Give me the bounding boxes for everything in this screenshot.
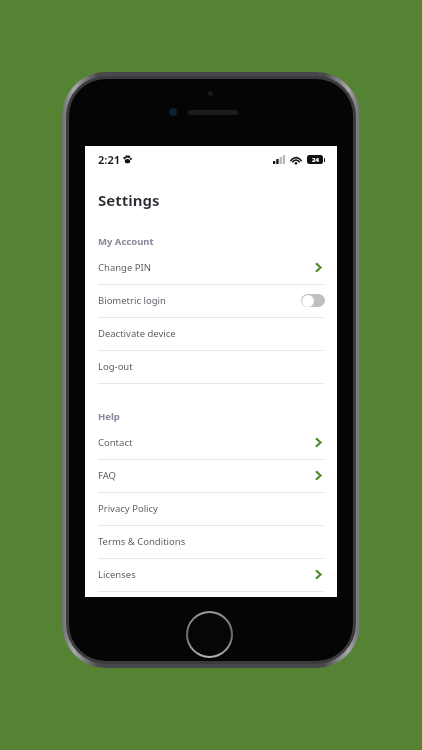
staticText: Deactivate device [98, 327, 176, 340]
staticText: Change PIN [98, 261, 151, 274]
staticText: Contact [98, 436, 133, 449]
button[interactable]: Privacy Policy [85, 493, 337, 526]
staticText: Help [98, 410, 120, 423]
staticText: Licenses [98, 568, 136, 581]
staticText: Privacy Policy [98, 502, 158, 515]
staticText: 24 [312, 156, 319, 164]
staticText: FAQ [98, 469, 117, 482]
button[interactable]: Change PIN [85, 252, 337, 285]
button[interactable]: Deactivate device [85, 318, 337, 351]
button[interactable]: Biometric login [85, 285, 337, 318]
button[interactable]: FAQ [85, 460, 337, 493]
button[interactable]: Licenses [85, 559, 337, 592]
button[interactable]: Home [186, 611, 233, 658]
staticText: My Account [98, 235, 154, 248]
staticText: Log-out [98, 360, 133, 373]
staticText: 2:21 [98, 152, 120, 167]
button[interactable]: Log-out [85, 351, 337, 384]
staticText: Biometric login [98, 294, 166, 307]
staticText: Settings [98, 190, 160, 210]
button[interactable]: Biometric login toggle [301, 294, 325, 307]
button[interactable]: Contact [85, 427, 337, 460]
button[interactable]: Terms & Conditions [85, 526, 337, 559]
staticText: Terms & Conditions [98, 535, 186, 548]
